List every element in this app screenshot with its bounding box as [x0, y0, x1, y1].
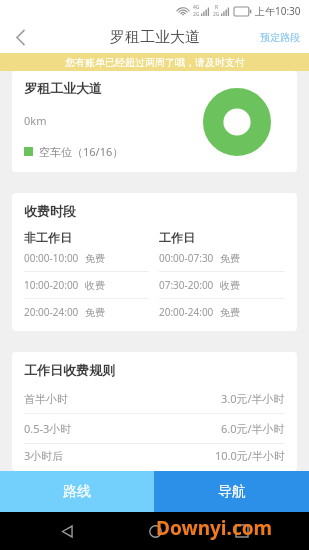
- staticText: 罗租工业大道: [24, 80, 102, 96]
- staticText: 上午10:30: [255, 4, 301, 18]
- button[interactable]: 导航: [154, 471, 309, 512]
- staticText: 免费: [220, 306, 240, 319]
- staticText: 3.0元/半小时: [221, 391, 285, 406]
- staticText: 预定路段: [260, 31, 300, 44]
- staticText: 0.5-3小时: [24, 421, 72, 436]
- staticText: R: [215, 4, 219, 11]
- staticText: 00:00-07:30: [159, 251, 214, 265]
- button[interactable]: 路线: [0, 471, 154, 512]
- staticText: 0km: [24, 113, 47, 128]
- staticText: 工作日收费规则: [24, 362, 115, 378]
- staticText: 6.0元/半小时: [221, 421, 285, 436]
- staticText: 非工作日: [24, 230, 72, 245]
- button[interactable]: Back: [47, 512, 87, 550]
- staticText: 罗租工业大道: [110, 28, 200, 47]
- staticText: 收费时段: [24, 203, 76, 219]
- staticText: 免费: [85, 306, 105, 319]
- staticText: 10.0元/半小时: [215, 448, 285, 463]
- staticText: 2G: [193, 11, 200, 18]
- staticText: 收费: [85, 279, 105, 292]
- button[interactable]: 预定路段: [251, 25, 309, 50]
- staticText: 3小时后: [24, 448, 64, 463]
- staticText: 免费: [85, 252, 105, 265]
- staticText: 工作日: [159, 230, 195, 245]
- staticText: 20:00-24:00: [24, 305, 79, 319]
- staticText: 您有账单已经超过两周了哦，请及时支付: [65, 56, 245, 69]
- staticText: 收费: [220, 279, 240, 292]
- staticText: 00:00-10:00: [24, 251, 79, 265]
- staticText: 免费: [220, 252, 240, 265]
- staticText: 空车位（16/16）: [39, 144, 124, 159]
- staticText: 20:00-24:00: [159, 305, 214, 319]
- button[interactable]: Back: [0, 21, 40, 53]
- staticText: 2G: [213, 11, 220, 18]
- button[interactable]: Recents: [222, 512, 262, 550]
- staticText: 首半小时: [24, 392, 68, 406]
- staticText: 导航: [218, 483, 246, 501]
- staticText: 4G: [193, 4, 200, 11]
- button[interactable]: Home: [135, 512, 175, 550]
- staticText: 07:30-20:00: [159, 278, 214, 292]
- staticText: 10:00-20:00: [24, 278, 79, 292]
- staticText: 路线: [63, 483, 91, 501]
- staticText: Downyi.com: [156, 515, 273, 541]
